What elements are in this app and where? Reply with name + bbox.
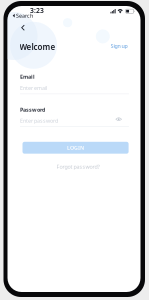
button[interactable]: Enter password	[20, 115, 115, 127]
button[interactable]: Back to Search	[13, 12, 33, 19]
staticText: 3:23	[30, 6, 44, 15]
staticText: Email	[20, 73, 35, 80]
staticText: Welcome	[19, 42, 55, 52]
staticText: LOGIN	[67, 144, 84, 151]
staticText: Enter password	[20, 117, 58, 124]
staticText: Enter email	[20, 84, 47, 92]
button[interactable]: Forgot password?	[54, 161, 102, 173]
button[interactable]: Enter email	[20, 82, 129, 94]
staticText: Search	[16, 12, 33, 19]
button[interactable]: Sign up	[108, 40, 130, 52]
button[interactable]: LOGIN	[22, 142, 129, 154]
staticText: Forgot password?	[56, 163, 99, 170]
button[interactable]: Show password	[114, 114, 124, 124]
staticText: Password	[20, 106, 45, 113]
button[interactable]: Back	[16, 21, 29, 34]
staticText: Sign up	[111, 42, 128, 49]
